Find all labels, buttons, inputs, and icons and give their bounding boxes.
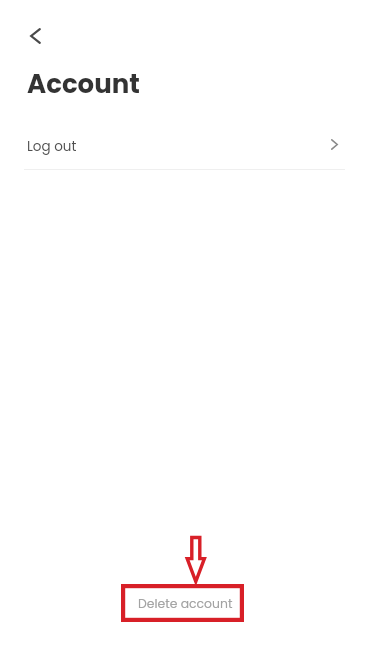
staticText: Log out <box>27 137 77 156</box>
button[interactable]: Delete account <box>124 584 247 622</box>
staticText: Delete account <box>138 595 233 612</box>
button[interactable]: Log out <box>0 124 375 169</box>
staticText: Account <box>27 66 140 102</box>
button[interactable]: Back <box>14 15 56 57</box>
